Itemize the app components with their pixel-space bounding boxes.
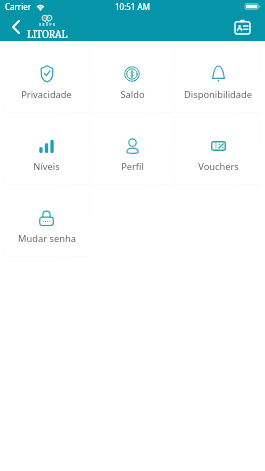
button[interactable]: Voltar (3, 14, 29, 40)
button[interactable]: Carteirinha (230, 15, 254, 39)
button[interactable]: Saldo (90, 42, 174, 112)
button[interactable]: Mudar senha (5, 186, 88, 256)
button[interactable]: Níveis (5, 114, 88, 184)
staticText: Carrier (5, 1, 32, 12)
button[interactable]: Privacidade (5, 42, 88, 112)
staticText: LITORAL (27, 27, 68, 41)
staticText: Níveis (33, 160, 60, 173)
staticText: Disponibilidade (184, 88, 252, 101)
staticText: 10:51 AM (115, 1, 150, 12)
staticText: Saldo (120, 88, 145, 101)
staticText: Privacidade (21, 88, 72, 101)
staticText: G R U P O (39, 23, 56, 27)
button[interactable]: Perfil (90, 114, 174, 184)
button[interactable]: Grupo Litoral (23, 15, 71, 43)
staticText: Vouchers (198, 160, 239, 173)
staticText: Mudar senha (18, 232, 76, 245)
button[interactable]: Disponibilidade (176, 42, 260, 112)
button[interactable]: Vouchers (176, 114, 260, 184)
staticText: Perfil (121, 160, 144, 173)
